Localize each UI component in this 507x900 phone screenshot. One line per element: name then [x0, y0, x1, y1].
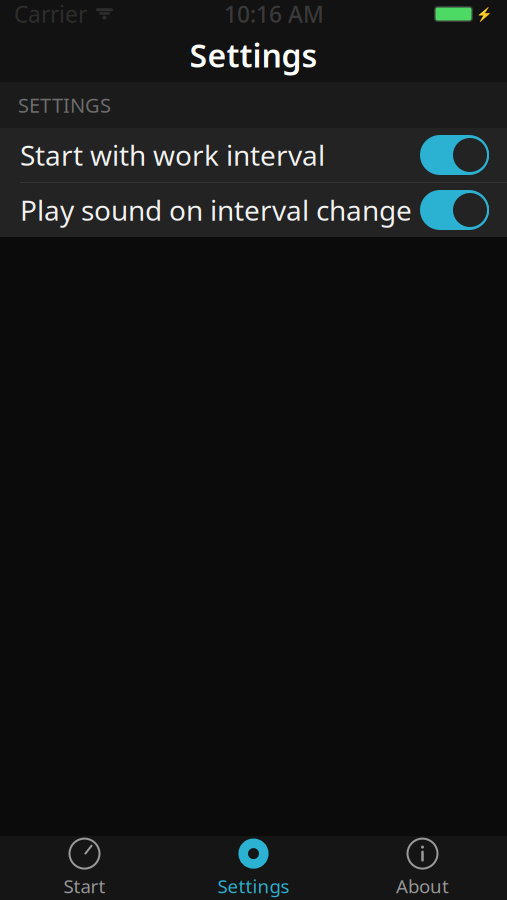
staticText: Carrier — [14, 0, 87, 29]
staticText: ⚡ — [476, 6, 493, 22]
staticText: Start — [63, 874, 105, 898]
button[interactable]: About — [338, 836, 507, 900]
staticText: Settings — [189, 34, 317, 76]
button[interactable]: Play sound on interval change — [0, 183, 507, 237]
staticText: SETTINGS — [18, 92, 111, 118]
staticText: Settings — [217, 874, 289, 898]
staticText: About — [396, 874, 449, 898]
button[interactable]: Settings — [169, 836, 338, 900]
staticText: Play sound on interval change — [20, 191, 412, 229]
staticText: Start with work interval — [20, 136, 325, 174]
button[interactable]: Start with work interval — [0, 128, 507, 182]
staticText: 10:16 AM — [224, 0, 324, 29]
button[interactable]: Start — [0, 836, 169, 900]
